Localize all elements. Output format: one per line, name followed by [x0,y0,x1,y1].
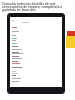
staticText: guárdala en favoritos. [2,8,37,12]
staticText: Consulta todos los detalles de una [2,2,56,6]
staticText: convocatoria de empleo, compártela o [2,5,63,9]
